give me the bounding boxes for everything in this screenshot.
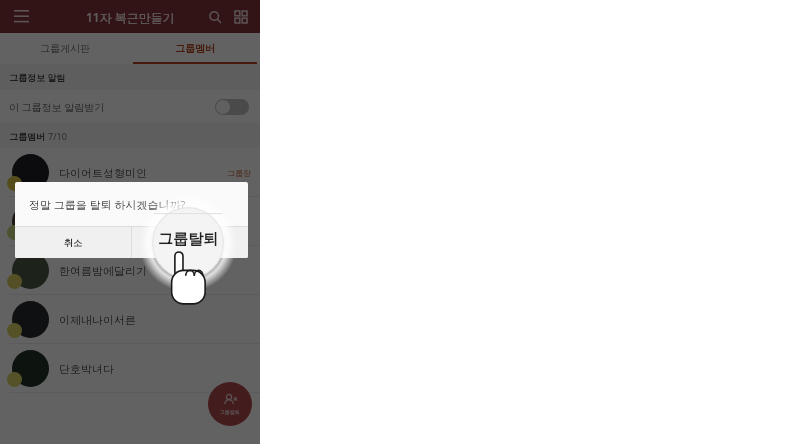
- button[interactable]: Grid view: [228, 4, 254, 30]
- staticText: 이 그룹정보 알림받기: [9, 100, 105, 114]
- button[interactable]: 이제내나이서른: [0, 295, 260, 344]
- staticText: 그룹멤버: [175, 42, 215, 55]
- button[interactable]: 그룹멤버: [130, 33, 260, 64]
- button[interactable]: 그룹탈퇴: [208, 382, 252, 426]
- staticText: 한여름밤에달리기: [59, 264, 147, 278]
- button[interactable]: 다이어트성형미인: [0, 148, 260, 197]
- staticText: 취소: [64, 237, 82, 248]
- button[interactable]: Menu: [8, 4, 34, 30]
- staticText: 그룹탈퇴: [220, 409, 240, 415]
- button[interactable]: 오늘만열심히: [0, 197, 260, 246]
- staticText: 그룹게시판: [40, 42, 90, 55]
- button[interactable]: 단호박녀다: [0, 344, 260, 393]
- staticText: 정말 그룹을 탈퇴 하시겠습니까?: [29, 197, 186, 212]
- staticText: 그룹탈퇴: [158, 230, 218, 249]
- staticText: 그룹탈퇴: [172, 237, 208, 248]
- button[interactable]: 한여름밤에달리기: [0, 246, 260, 295]
- staticText: 오늘만열심히: [59, 215, 125, 229]
- button[interactable]: 이 그룹정보 알림받기: [0, 90, 260, 123]
- staticText: 그룹멤버: [9, 131, 45, 142]
- button[interactable]: 그룹탈퇴: [132, 227, 248, 258]
- button[interactable]: 취소: [15, 227, 131, 258]
- staticText: 다이어트성형미인: [59, 166, 147, 180]
- staticText: 단호박녀다: [59, 362, 114, 376]
- staticText: 그룹장: [227, 168, 251, 178]
- staticText: 이제내나이서른: [59, 313, 136, 327]
- button[interactable]: 그룹게시판: [0, 33, 130, 64]
- button[interactable]: Search: [202, 4, 228, 30]
- staticText: 그룹정보 알림: [9, 71, 66, 83]
- staticText: 7/10: [48, 130, 67, 142]
- staticText: 11자 복근만들기: [86, 9, 175, 25]
